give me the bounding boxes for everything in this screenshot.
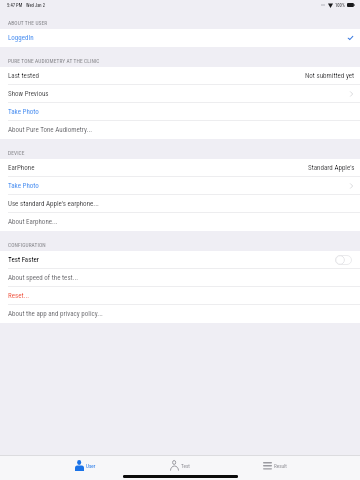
button[interactable]: Last tested xyxy=(0,67,360,85)
button[interactable]: EarPhone xyxy=(0,159,360,177)
staticText: About the app and privacy policy... xyxy=(8,310,103,318)
staticText: About Pure Tone Audiometry... xyxy=(8,126,93,134)
button[interactable]: About Earphone... xyxy=(0,213,360,231)
staticText: User xyxy=(86,463,96,469)
staticText: Use standard Apple's earphone... xyxy=(8,200,99,208)
staticText: CONFIGURATION xyxy=(8,242,46,248)
button[interactable]: Test xyxy=(132,458,227,473)
button[interactable]: Show Previous xyxy=(0,85,360,103)
staticText: EarPhone xyxy=(8,164,35,172)
staticText: DEVICE xyxy=(8,150,25,156)
button[interactable]: Test Faster xyxy=(0,251,360,269)
staticText: About speed of the test... xyxy=(8,274,79,282)
button[interactable]: Take Photo xyxy=(0,177,360,195)
button[interactable]: Take Photo xyxy=(0,103,360,121)
staticText: Take Photo xyxy=(8,108,39,116)
button[interactable]: Reset... xyxy=(0,287,360,305)
button[interactable]: User xyxy=(38,458,132,473)
staticText: Test Faster xyxy=(8,256,40,264)
button[interactable]: Use standard Apple's earphone... xyxy=(0,195,360,213)
staticText: 5:47 PM xyxy=(7,3,23,8)
button[interactable]: About speed of the test... xyxy=(0,269,360,287)
staticText: Last tested xyxy=(8,72,39,80)
staticText: Not submitted yet xyxy=(305,72,355,80)
staticText: ABOUT THE USER xyxy=(8,20,48,26)
staticText: 100% xyxy=(335,3,345,8)
staticText: Standard Apple's xyxy=(308,164,355,172)
staticText: Test xyxy=(181,463,190,469)
button[interactable]: Result xyxy=(227,458,322,473)
staticText: PURE TONE AUDIOMETRY AT THE CLINIC xyxy=(8,58,100,64)
button[interactable]: Test Faster toggle xyxy=(335,255,352,265)
staticText: Show Previous xyxy=(8,90,49,98)
button[interactable]: About Pure Tone Audiometry... xyxy=(0,121,360,139)
button[interactable]: LoggedIn xyxy=(0,29,360,47)
staticText: About Earphone... xyxy=(8,218,58,226)
staticText: Take Photo xyxy=(8,182,39,190)
staticText: Result xyxy=(274,463,287,469)
staticText: Wed Jan 2 xyxy=(26,3,45,8)
staticText: Reset... xyxy=(8,292,30,300)
button[interactable]: About the app and privacy policy... xyxy=(0,305,360,323)
staticText: LoggedIn xyxy=(8,34,34,42)
